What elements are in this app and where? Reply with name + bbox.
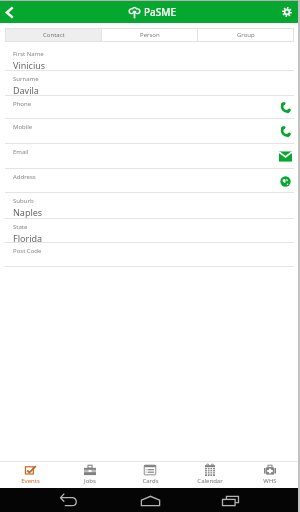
- button[interactable]: Call: [275, 121, 296, 142]
- button[interactable]: Surname: [0, 71, 300, 96]
- button[interactable]: Phone: [0, 96, 300, 119]
- staticText: Calendar: [197, 477, 223, 485]
- button[interactable]: First Name: [0, 46, 300, 71]
- staticText: Email: [13, 148, 29, 156]
- button[interactable]: Cards: [120, 461, 180, 488]
- button[interactable]: Email: [0, 144, 300, 169]
- staticText: Cards: [142, 477, 159, 485]
- staticText: Person: [140, 31, 160, 39]
- staticText: Group: [237, 31, 255, 39]
- staticText: Phone: [13, 100, 32, 108]
- staticText: WHS: [263, 477, 277, 485]
- button[interactable]: WHS: [240, 461, 300, 488]
- staticText: Mobile: [13, 123, 33, 131]
- staticText: PaSME: [144, 5, 177, 19]
- button[interactable]: Jobs: [60, 461, 120, 488]
- button[interactable]: Back: [0, 1, 22, 23]
- staticText: Address: [13, 173, 36, 181]
- button[interactable]: State: [0, 219, 300, 243]
- button[interactable]: Recent apps: [219, 492, 242, 509]
- button[interactable]: Person: [102, 29, 197, 41]
- button[interactable]: Mobile: [0, 119, 300, 144]
- button[interactable]: Settings: [276, 1, 298, 23]
- button[interactable]: Open map: [275, 171, 296, 192]
- button[interactable]: Calendar: [180, 461, 240, 488]
- button[interactable]: Post Code: [0, 243, 300, 267]
- staticText: First Name: [13, 50, 44, 58]
- button[interactable]: Address: [0, 169, 300, 193]
- staticText: Events: [21, 477, 40, 485]
- staticText: Suburb: [13, 197, 34, 205]
- staticText: Davila: [13, 84, 39, 96]
- staticText: Contact: [43, 31, 65, 39]
- staticText: Naples: [13, 206, 43, 218]
- staticText: Post Code: [13, 247, 42, 255]
- button[interactable]: Events: [0, 461, 60, 488]
- button[interactable]: Email: [275, 146, 296, 167]
- staticText: Surname: [13, 75, 39, 83]
- button[interactable]: Home: [137, 492, 163, 509]
- button[interactable]: Back: [57, 492, 80, 509]
- staticText: Florida: [13, 232, 43, 244]
- button[interactable]: Call: [275, 97, 296, 118]
- button[interactable]: Suburb: [0, 193, 300, 219]
- button[interactable]: Contact: [6, 29, 101, 41]
- staticText: Vinicius: [13, 59, 46, 71]
- button[interactable]: Group: [198, 29, 293, 41]
- staticText: Jobs: [84, 477, 96, 485]
- staticText: State: [13, 223, 28, 231]
